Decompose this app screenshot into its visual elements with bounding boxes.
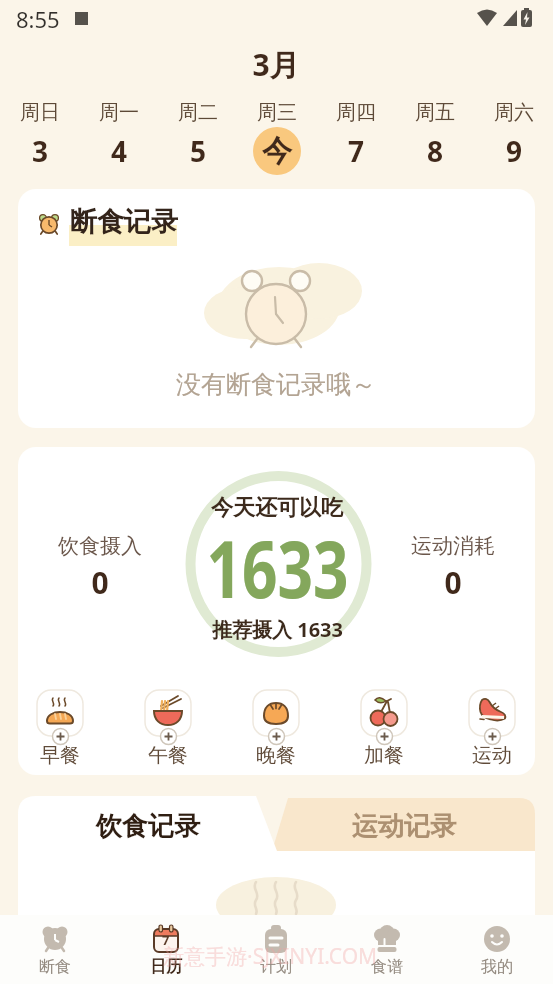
- staticText: 周五: [415, 100, 455, 125]
- button[interactable]: 计划: [236, 915, 316, 984]
- staticText: 推荐摄入 1633: [212, 616, 343, 643]
- button[interactable]: 断食: [15, 915, 95, 984]
- staticText: 7: [348, 132, 365, 170]
- staticText: 饮食记录: [96, 810, 200, 843]
- staticText: 周四: [336, 100, 376, 125]
- button[interactable]: 午餐: [141, 690, 195, 768]
- button[interactable]: 周五: [395, 100, 474, 175]
- staticText: 周三: [257, 100, 297, 125]
- staticText: 午餐: [148, 743, 188, 768]
- staticText: 今天还可以吃: [211, 494, 343, 522]
- staticText: 0: [91, 562, 109, 603]
- button[interactable]: 加餐: [357, 690, 411, 768]
- button[interactable]: 晚餐: [249, 690, 303, 768]
- staticText: 饮食摄入: [58, 533, 142, 559]
- button[interactable]: 周日: [0, 100, 79, 175]
- staticText: 周六: [494, 100, 534, 125]
- staticText: 今: [262, 132, 292, 170]
- staticText: 运动消耗: [411, 533, 495, 559]
- staticText: 新意手游·SJXINYI.COM: [163, 942, 378, 971]
- button[interactable]: 运动记录: [311, 801, 497, 851]
- staticText: 8:55: [16, 4, 60, 34]
- staticText: 7: [162, 931, 170, 949]
- button[interactable]: 运动: [465, 690, 519, 768]
- staticText: 运动记录: [352, 810, 456, 843]
- button[interactable]: 周六: [474, 100, 553, 175]
- staticText: 周一: [99, 100, 139, 125]
- staticText: 断食: [39, 957, 71, 977]
- staticText: 4: [111, 132, 128, 170]
- button[interactable]: 周二: [158, 100, 237, 175]
- staticText: 周日: [20, 100, 60, 125]
- staticText: 日历: [150, 957, 182, 977]
- staticText: 8: [427, 132, 444, 170]
- staticText: 周二: [178, 100, 218, 125]
- staticText: 加餐: [364, 743, 404, 768]
- staticText: 1633: [206, 514, 349, 622]
- staticText: 3月: [252, 44, 300, 85]
- button[interactable]: 周四: [316, 100, 395, 175]
- button[interactable]: 早餐: [33, 690, 87, 768]
- button[interactable]: 饮食记录: [55, 801, 241, 851]
- button[interactable]: 周一: [79, 100, 158, 175]
- staticText: 3: [32, 132, 49, 170]
- button[interactable]: 我的: [457, 915, 537, 984]
- button[interactable]: 周三: [237, 100, 316, 175]
- staticText: 早餐: [40, 743, 80, 768]
- staticText: 运动: [472, 743, 512, 768]
- staticText: 0: [444, 562, 462, 603]
- button[interactable]: 7: [126, 915, 206, 984]
- staticText: 断食记录: [70, 205, 178, 239]
- staticText: 9: [506, 132, 523, 170]
- staticText: 计划: [260, 957, 292, 977]
- staticText: 食谱: [371, 957, 403, 977]
- staticText: 5: [190, 132, 207, 170]
- staticText: 没有断食记录哦～: [176, 369, 376, 400]
- button[interactable]: 食谱: [347, 915, 427, 984]
- staticText: 晚餐: [256, 743, 296, 768]
- staticText: 我的: [481, 957, 513, 977]
